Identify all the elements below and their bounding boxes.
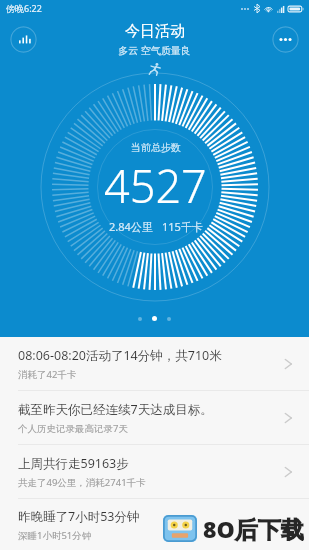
button[interactable]: 昨晚睡了7小时53分钟: [0, 499, 309, 550]
button[interactable]: 08:06-08:20活动了14分钟，共710米: [0, 337, 309, 390]
button[interactable]: More options: [272, 26, 299, 53]
staticText: 2.84公里: [109, 219, 153, 234]
staticText: 傍晚6:22: [6, 2, 42, 14]
staticText: 消耗了42千卡: [18, 368, 77, 381]
staticText: 共走了49公里，消耗2741千卡: [18, 476, 146, 489]
staticText: 昨晚睡了7小时53分钟: [18, 508, 140, 525]
staticText: 4527: [104, 155, 207, 216]
staticText: 08:06-08:20活动了14分钟，共710米: [18, 347, 222, 364]
staticText: 深睡1小时51分钟: [18, 529, 92, 542]
staticText: 今日活动: [125, 22, 185, 41]
staticText: 截至昨天你已经连续7天达成目标。: [18, 401, 213, 418]
staticText: 上周共行走59163步: [18, 455, 129, 472]
button[interactable]: Statistics: [10, 26, 37, 53]
button[interactable]: 截至昨天你已经连续7天达成目标。: [0, 391, 309, 444]
staticText: 多云 空气质量良: [118, 43, 191, 57]
staticText: 个人历史记录最高记录7天: [18, 422, 128, 435]
staticText: 115千卡: [162, 219, 203, 234]
staticText: 当前总步数: [131, 141, 181, 154]
button[interactable]: 上周共行走59163步: [0, 445, 309, 498]
staticText: 8O后下载: [203, 513, 304, 544]
